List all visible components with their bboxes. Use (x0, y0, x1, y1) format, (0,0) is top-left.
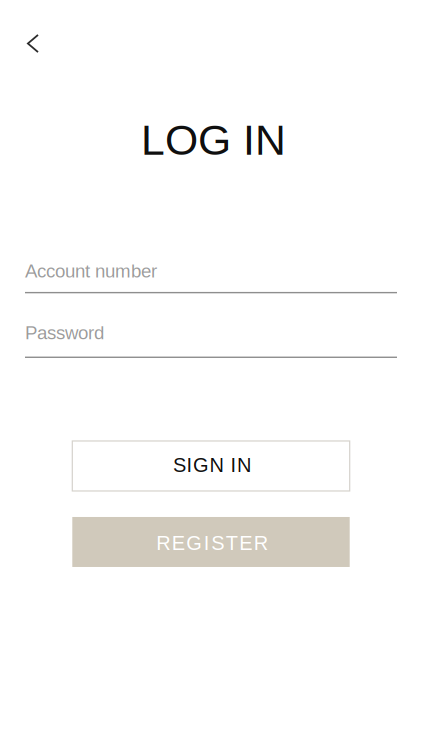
button[interactable]: REGISTER (72, 517, 350, 567)
button[interactable]: Back (0, 0, 61, 67)
staticText: LOG IN (141, 116, 286, 164)
staticText: SIGN IN (173, 454, 251, 476)
button[interactable]: SIGN IN (72, 441, 350, 491)
staticText: Account number (25, 261, 157, 282)
staticText: Password (25, 322, 104, 343)
staticText: REGISTER (156, 532, 268, 554)
